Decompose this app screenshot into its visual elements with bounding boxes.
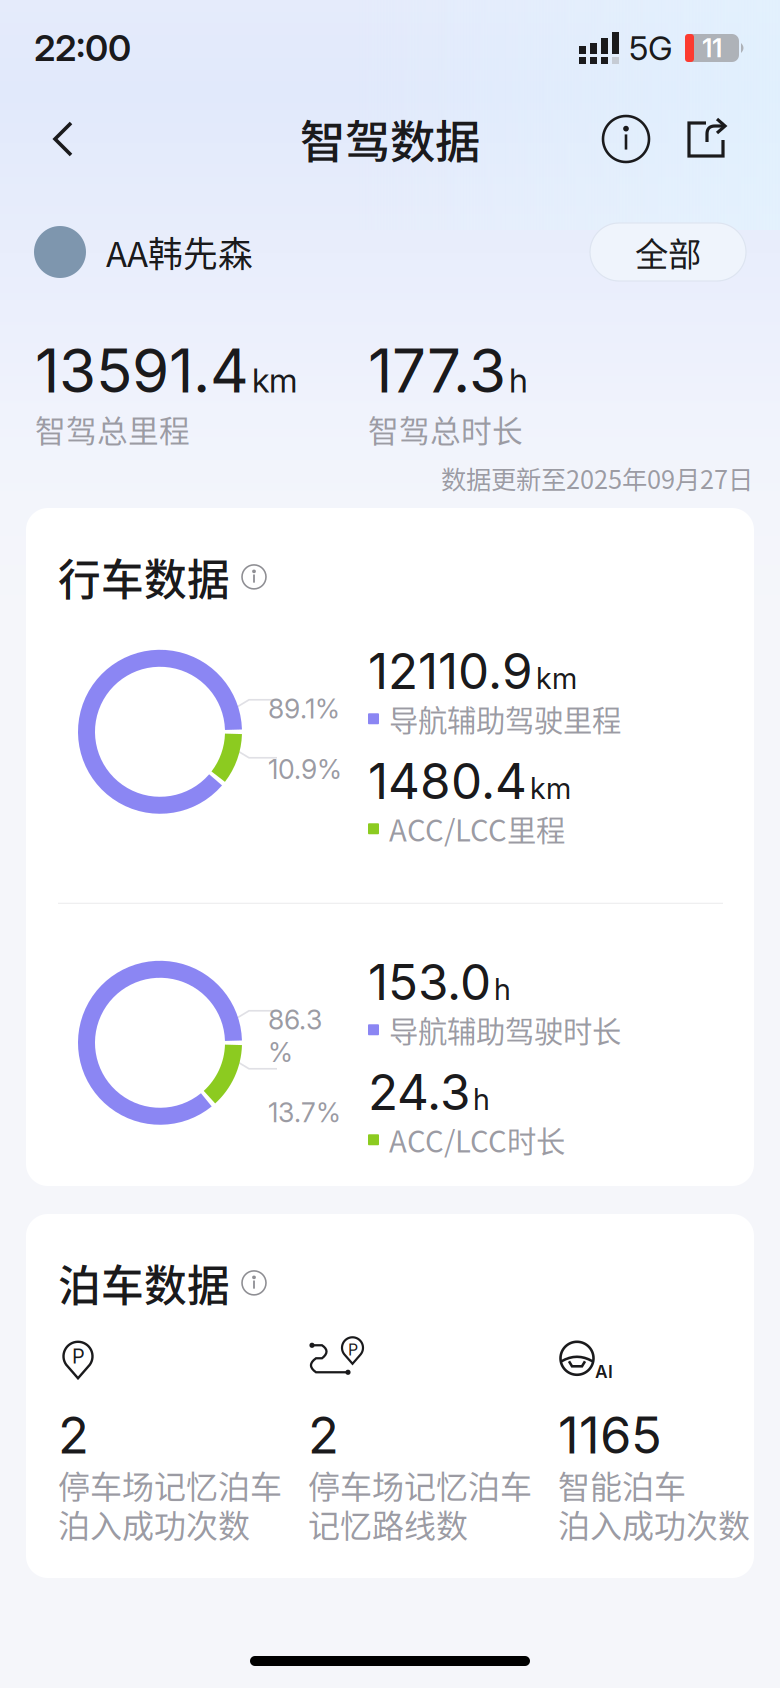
staticText: 泊车数据 bbox=[58, 1252, 230, 1314]
staticText: 22:00 bbox=[34, 26, 131, 70]
staticText: 停车场记忆泊车 bbox=[58, 1462, 282, 1508]
staticText: AA韩先森 bbox=[106, 227, 253, 277]
staticText: 2 bbox=[58, 1404, 89, 1466]
staticText: 停车场记忆泊车 bbox=[308, 1462, 532, 1508]
staticText: 24.3 bbox=[368, 1062, 470, 1122]
staticText: 记忆路线数 bbox=[308, 1501, 468, 1547]
staticText: h bbox=[473, 1081, 490, 1117]
staticText: P bbox=[72, 1344, 85, 1368]
staticText: 13591.4 bbox=[35, 334, 249, 407]
staticText: 1480.4 bbox=[368, 751, 527, 811]
staticText: 行车数据 bbox=[58, 546, 230, 608]
staticText: km bbox=[252, 360, 297, 400]
staticText: 智驾总时长 bbox=[368, 407, 523, 451]
staticText: AI bbox=[595, 1361, 613, 1382]
staticText: 智能泊车 bbox=[558, 1462, 686, 1508]
staticText: 智驾数据 bbox=[300, 106, 480, 172]
staticText: 2 bbox=[308, 1404, 339, 1466]
staticText: km bbox=[536, 660, 577, 696]
staticText: 12110.9 bbox=[368, 641, 533, 701]
staticText: 89.1% bbox=[268, 693, 340, 725]
staticText: 13.7% bbox=[268, 1096, 341, 1129]
staticText: 泊入成功次数 bbox=[558, 1501, 750, 1547]
staticText: 5G bbox=[629, 28, 673, 68]
staticText: 153.0 bbox=[368, 952, 491, 1012]
button[interactable]: Share bbox=[677, 110, 735, 168]
staticText: 全部 bbox=[635, 228, 701, 276]
staticText: 导航辅助驾驶里程 bbox=[389, 697, 621, 740]
staticText: 导航辅助驾驶时长 bbox=[389, 1008, 621, 1051]
staticText: 86.3% bbox=[268, 1004, 322, 1068]
staticText: 智驾总里程 bbox=[35, 407, 190, 451]
staticText: 177.3 bbox=[368, 334, 506, 407]
staticText: 泊入成功次数 bbox=[58, 1501, 250, 1547]
button[interactable]: Info bbox=[597, 110, 655, 168]
staticText: 1165 bbox=[558, 1404, 662, 1466]
staticText: h bbox=[494, 971, 511, 1007]
button[interactable]: Back bbox=[32, 108, 94, 170]
staticText: 10.9% bbox=[268, 753, 342, 785]
staticText: km bbox=[530, 770, 571, 806]
staticText: P bbox=[348, 1340, 358, 1359]
staticText: 11 bbox=[702, 33, 722, 63]
staticText: 数据更新至2025年09月27日 bbox=[441, 460, 753, 496]
staticText: ACC/LCC时长 bbox=[389, 1118, 565, 1161]
button[interactable]: 全部 bbox=[590, 223, 746, 281]
staticText: ACC/LCC里程 bbox=[389, 807, 565, 850]
staticText: h bbox=[509, 360, 528, 400]
